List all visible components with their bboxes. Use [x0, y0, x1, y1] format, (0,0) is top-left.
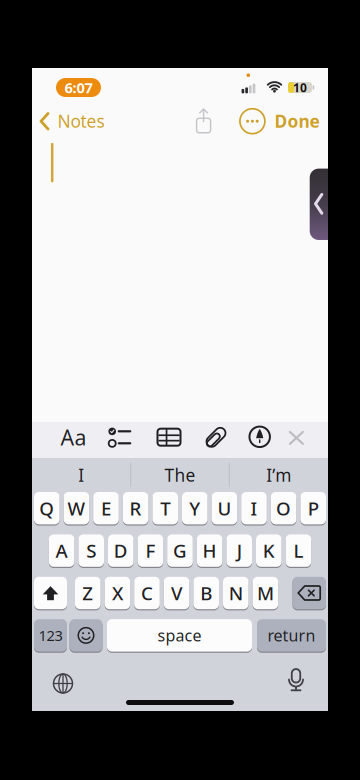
button[interactable]: B: [193, 577, 219, 609]
button[interactable]: E: [93, 492, 119, 524]
staticText: 6:07: [64, 78, 92, 97]
staticText: M: [257, 581, 274, 605]
staticText: Z: [82, 581, 93, 605]
button[interactable]: P: [300, 492, 326, 524]
button[interactable]: N: [223, 577, 249, 609]
button[interactable]: J: [226, 534, 252, 567]
staticText: I’m: [266, 463, 291, 486]
staticText: T: [160, 496, 170, 521]
button[interactable]: I: [33, 458, 129, 492]
staticText: W: [67, 496, 85, 521]
staticText: N: [229, 581, 243, 605]
button[interactable]: X: [105, 577, 130, 609]
staticText: B: [200, 581, 212, 605]
staticText: Done: [274, 109, 319, 132]
staticText: L: [293, 538, 303, 563]
button[interactable]: I’m: [231, 458, 327, 492]
button[interactable]: Next keyboard: [52, 672, 74, 694]
button[interactable]: Back: [38, 107, 110, 135]
staticText: J: [237, 538, 242, 563]
button[interactable]: Share: [193, 107, 215, 134]
button[interactable]: space: [107, 619, 252, 652]
staticText: return: [267, 625, 315, 646]
button[interactable]: F: [138, 534, 163, 567]
staticText: C: [141, 581, 153, 605]
button[interactable]: Markup: [249, 426, 271, 448]
staticText: 123: [38, 626, 62, 645]
staticText: F: [145, 538, 155, 563]
button[interactable]: G: [167, 534, 193, 567]
button[interactable]: Done: [274, 109, 319, 132]
button[interactable]: Dictate: [286, 668, 306, 694]
staticText: X: [112, 581, 123, 605]
staticText: I: [78, 463, 84, 486]
button[interactable]: T: [152, 492, 178, 524]
button[interactable]: O: [271, 492, 296, 524]
button[interactable]: D: [108, 534, 134, 567]
button[interactable]: W: [64, 492, 89, 524]
button[interactable]: L: [286, 534, 311, 567]
staticText: Aa: [60, 423, 86, 451]
staticText: U: [217, 496, 231, 521]
button[interactable]: R: [123, 492, 148, 524]
button[interactable]: More options: [240, 109, 265, 134]
staticText: 10: [293, 80, 307, 95]
button[interactable]: Attach: [204, 425, 228, 449]
staticText: K: [263, 538, 275, 563]
staticText: space: [157, 625, 201, 646]
button[interactable]: Checklist: [108, 426, 134, 448]
button[interactable]: Y: [182, 492, 208, 524]
button[interactable]: The: [132, 458, 228, 492]
staticText: Y: [189, 496, 200, 521]
button[interactable]: Delete: [292, 577, 326, 609]
button[interactable]: S: [78, 534, 104, 567]
button[interactable]: 123: [34, 619, 67, 652]
button[interactable]: Emoji: [69, 619, 102, 652]
button[interactable]: M: [253, 577, 278, 609]
button[interactable]: Shift: [34, 577, 67, 609]
button[interactable]: Dismiss keyboard: [288, 430, 304, 445]
staticText: E: [101, 496, 111, 521]
button[interactable]: U: [212, 492, 237, 524]
staticText: V: [171, 581, 182, 605]
staticText: A: [56, 538, 68, 563]
staticText: P: [308, 496, 319, 521]
button[interactable]: Z: [75, 577, 101, 609]
button[interactable]: Q: [34, 492, 60, 524]
staticText: Notes: [57, 109, 104, 132]
button[interactable]: K: [256, 534, 282, 567]
button[interactable]: I: [241, 492, 267, 524]
button[interactable]: Expand overlay: [310, 169, 338, 240]
staticText: D: [114, 538, 128, 563]
staticText: I: [250, 496, 257, 521]
staticText: Q: [39, 496, 54, 521]
staticText: O: [276, 496, 291, 521]
button[interactable]: C: [134, 577, 160, 609]
staticText: H: [203, 538, 217, 563]
button[interactable]: H: [197, 534, 222, 567]
button[interactable]: Format: [60, 423, 86, 451]
staticText: The: [164, 463, 195, 486]
button[interactable]: return: [257, 619, 326, 652]
staticText: R: [130, 496, 142, 521]
staticText: G: [173, 538, 187, 563]
button[interactable]: Table: [157, 428, 181, 446]
button[interactable]: A: [49, 534, 74, 567]
button[interactable]: V: [164, 577, 189, 609]
staticText: S: [86, 538, 96, 563]
